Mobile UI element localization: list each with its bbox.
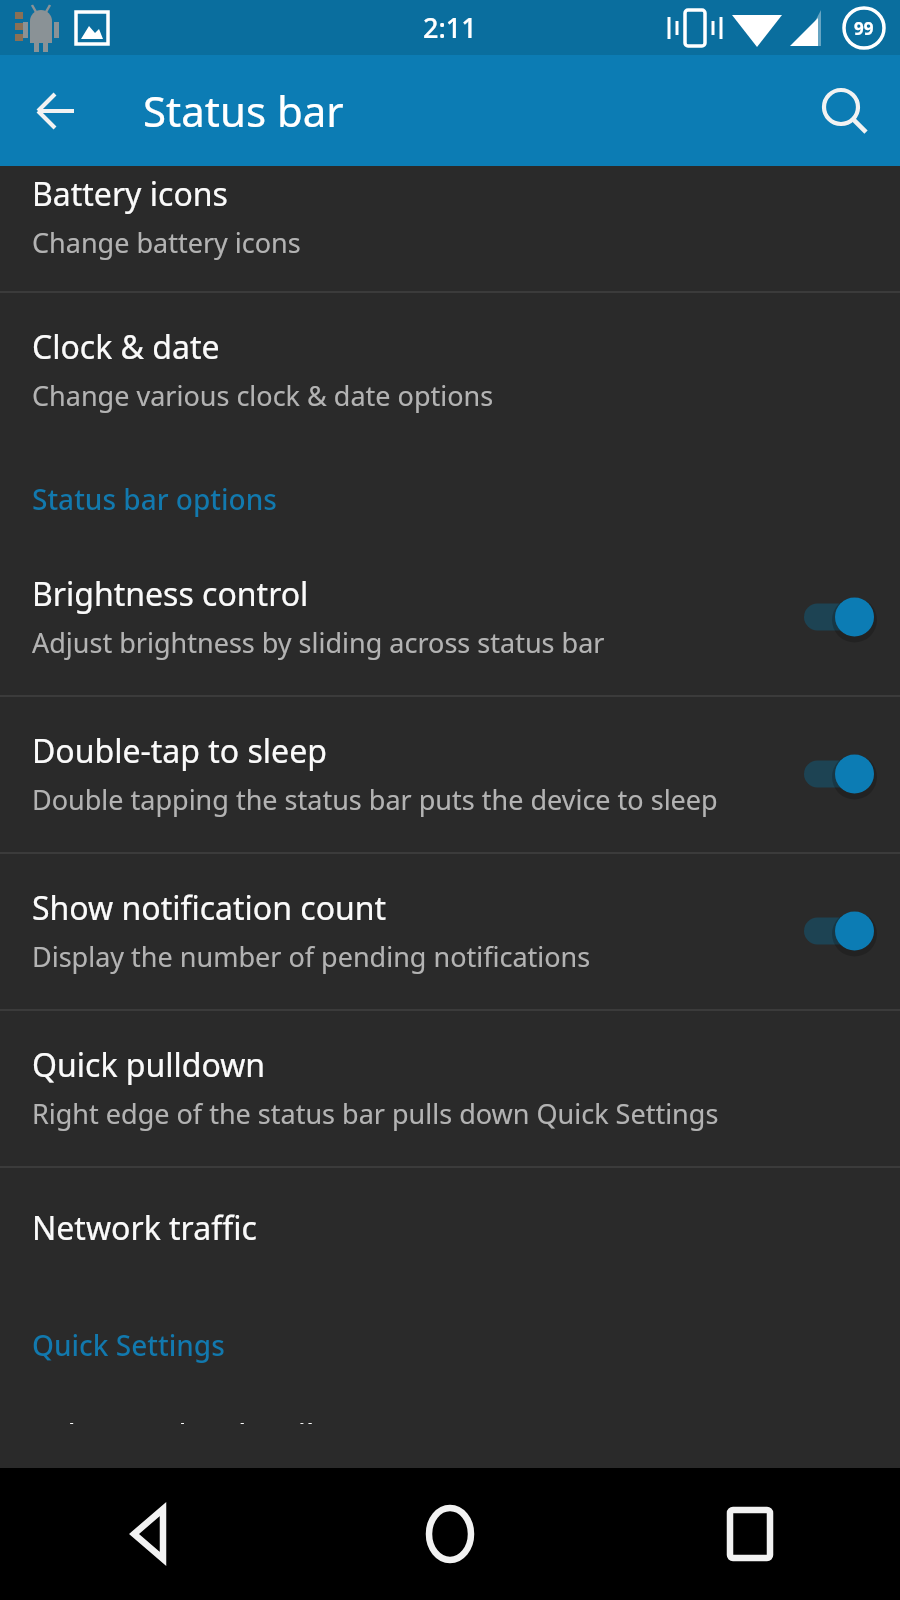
staticText: Change various clock & date options: [32, 377, 494, 414]
button[interactable]: Home: [300, 1468, 600, 1600]
staticText: Status bar: [143, 82, 344, 139]
button[interactable]: Back: [12, 67, 100, 155]
staticText: Quick Settings: [32, 1326, 225, 1364]
staticText: Brightness control: [32, 572, 309, 616]
button[interactable]: Toggle on: [800, 591, 876, 643]
staticText: Right edge of the status bar pulls down …: [32, 1095, 719, 1132]
staticText: 99: [854, 17, 874, 40]
button[interactable]: Search: [800, 67, 888, 155]
staticText: Status bar options: [32, 480, 277, 518]
button[interactable]: Double-tap to sleep: [0, 697, 900, 852]
staticText: Select and order tiles: [32, 1414, 348, 1424]
staticText: 2:11: [423, 9, 477, 46]
button[interactable]: Toggle on: [800, 748, 876, 800]
button[interactable]: Clock & date: [0, 293, 900, 450]
button[interactable]: Back: [0, 1468, 300, 1600]
staticText: Adjust brightness by sliding across stat…: [32, 624, 605, 661]
button[interactable]: Toggle on: [800, 905, 876, 957]
button[interactable]: Network traffic: [0, 1168, 900, 1288]
button[interactable]: Brightness control: [0, 540, 900, 695]
staticText: Show notification count: [32, 886, 387, 930]
staticText: Battery icons: [32, 172, 228, 216]
button[interactable]: Quick pulldown: [0, 1011, 900, 1166]
staticText: Clock & date: [32, 325, 220, 369]
staticText: Network traffic: [32, 1206, 257, 1250]
button[interactable]: Show notification count: [0, 854, 900, 1009]
staticText: Double tapping the status bar puts the d…: [32, 781, 718, 818]
button[interactable]: Recents: [600, 1468, 900, 1600]
staticText: Quick pulldown: [32, 1043, 266, 1087]
staticText: Display the number of pending notificati…: [32, 938, 591, 975]
staticText: Double-tap to sleep: [32, 729, 327, 773]
staticText: Change battery icons: [32, 224, 301, 261]
button[interactable]: Battery icons: [0, 166, 900, 291]
